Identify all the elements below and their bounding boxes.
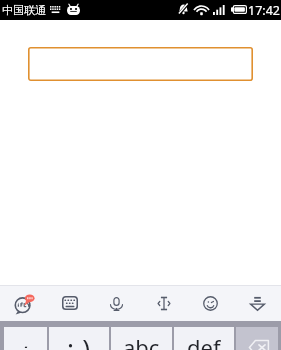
button[interactable]: Voice input [93, 286, 140, 321]
button[interactable]: Hide keyboard [234, 286, 281, 321]
staticText: , [23, 325, 29, 348]
button[interactable]: :-) [49, 327, 109, 350]
button[interactable]: Move cursor [140, 286, 187, 321]
staticText: abc [123, 332, 160, 350]
staticText: 17:42 [248, 2, 280, 19]
staticText: def [187, 332, 221, 350]
staticText: :-) [67, 330, 91, 350]
button[interactable]: , [4, 327, 47, 350]
button[interactable]: Input method [0, 286, 46, 321]
button[interactable] [28, 47, 253, 81]
staticText: 中国联通 [2, 3, 46, 17]
button[interactable]: Emoji [187, 286, 234, 321]
button[interactable]: abc [111, 327, 172, 350]
button[interactable]: Keyboard layout [46, 286, 93, 321]
button[interactable]: def [174, 327, 234, 350]
button[interactable]: Backspace [236, 327, 278, 350]
